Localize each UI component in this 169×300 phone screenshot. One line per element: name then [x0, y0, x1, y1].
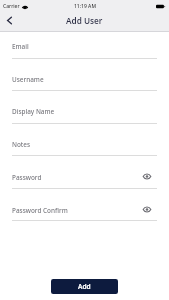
button[interactable]: Show password — [142, 171, 152, 181]
staticText: Add — [78, 282, 91, 291]
button[interactable]: Password — [0, 156, 169, 189]
staticText: Email — [12, 42, 29, 51]
staticText: Username — [12, 75, 44, 84]
button[interactable]: Notes — [0, 124, 169, 156]
staticText: Display Name — [12, 107, 55, 116]
staticText: Password Confirm — [12, 206, 68, 215]
button[interactable]: Display Name — [0, 91, 169, 124]
staticText: Notes — [12, 140, 31, 149]
button[interactable]: Add — [51, 279, 118, 294]
button[interactable]: Username — [0, 59, 169, 91]
button[interactable]: Email — [0, 32, 169, 59]
staticText: Add User — [66, 15, 103, 26]
staticText: 11:19 AM — [74, 3, 96, 10]
staticText: Carrier — [3, 3, 20, 10]
staticText: Password — [12, 173, 42, 182]
button[interactable]: Show password — [142, 204, 152, 214]
button[interactable]: Password Confirm — [0, 189, 169, 221]
button[interactable]: Back — [0, 11, 18, 29]
